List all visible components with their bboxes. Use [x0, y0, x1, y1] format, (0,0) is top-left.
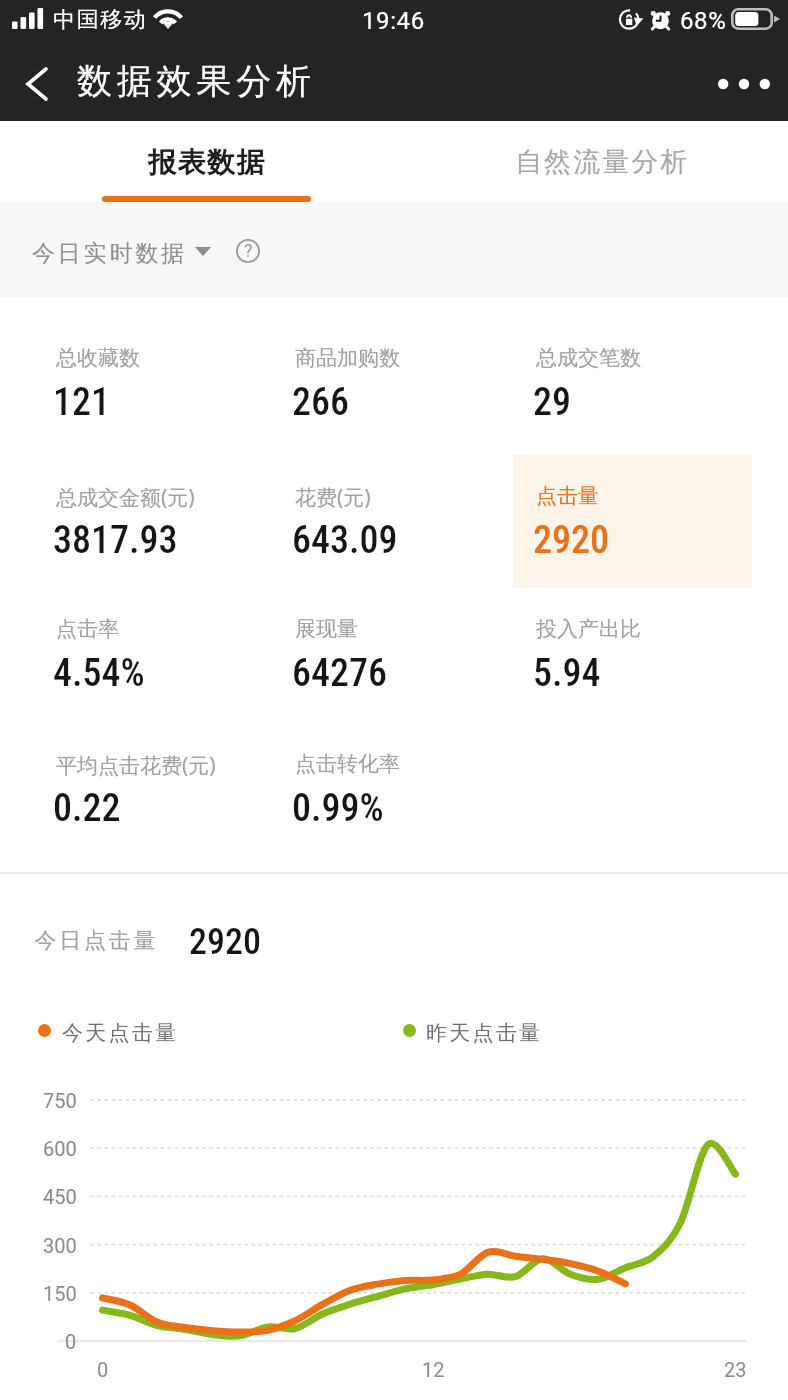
button[interactable]: 投入产出比: [513, 588, 752, 721]
staticText: 展现量: [295, 616, 358, 642]
button[interactable]: 报表数据: [0, 121, 414, 202]
staticText: 今日点击量: [33, 927, 157, 955]
staticText: 0.22: [53, 786, 121, 831]
staticText: 2920: [189, 921, 261, 963]
staticText: 总成交笔数: [536, 345, 641, 371]
staticText: 64276: [292, 651, 387, 696]
staticText: 0.99%: [292, 786, 384, 831]
staticText: 数据效果分析: [77, 59, 316, 103]
staticText: 自然流量分析: [515, 145, 690, 179]
staticText: 总成交金额(元): [56, 483, 195, 512]
staticText: 点击转化率: [295, 751, 400, 777]
button[interactable]: 总成交金额(元): [33, 455, 272, 588]
button[interactable]: 花费(元): [272, 455, 511, 588]
staticText: 点击量: [536, 483, 599, 509]
button[interactable]: 点击率: [33, 588, 272, 721]
staticText: 121: [53, 380, 110, 425]
button[interactable]: More options: [700, 48, 788, 120]
staticText: 23: [724, 1358, 747, 1381]
staticText: 266: [292, 380, 349, 425]
staticText: 0: [65, 1330, 77, 1353]
staticText: 68%: [680, 7, 727, 35]
button[interactable]: 总成交笔数: [513, 317, 752, 450]
button[interactable]: 点击转化率: [272, 723, 511, 856]
staticText: 2920: [533, 518, 609, 563]
staticText: 450: [43, 1185, 77, 1208]
button[interactable]: 展现量: [272, 588, 511, 721]
staticText: 商品加购数: [295, 345, 400, 371]
staticText: 19:46: [362, 7, 425, 35]
button[interactable]: Back: [0, 47, 74, 121]
staticText: 3817.93: [53, 518, 178, 563]
staticText: 中国移动: [53, 6, 148, 34]
button[interactable]: 平均点击花费(元): [33, 723, 272, 856]
staticText: 5.94: [533, 651, 601, 696]
staticText: 750: [43, 1089, 77, 1112]
staticText: 总收藏数: [56, 345, 140, 371]
staticText: 29: [533, 380, 571, 425]
staticText: 300: [43, 1234, 77, 1257]
button[interactable]: 点击量: [513, 455, 752, 588]
button[interactable]: 总收藏数: [33, 317, 272, 450]
staticText: 150: [43, 1282, 77, 1305]
staticText: 点击率: [56, 616, 119, 642]
staticText: 今天点击量: [62, 1020, 179, 1046]
staticText: 12: [422, 1358, 445, 1381]
staticText: ?: [244, 240, 253, 261]
button[interactable]: 商品加购数: [272, 317, 511, 450]
staticText: 4.54%: [53, 651, 145, 696]
button[interactable]: 今日实时数据: [22, 214, 224, 284]
staticText: 600: [43, 1137, 77, 1160]
staticText: 昨天点击量: [426, 1020, 543, 1046]
button[interactable]: 今日点击量: [0, 890, 788, 985]
button[interactable]: 自然流量分析: [414, 121, 788, 202]
staticText: 643.09: [292, 518, 398, 563]
staticText: 0: [97, 1358, 109, 1381]
staticText: 报表数据: [148, 145, 266, 180]
staticText: 平均点击花费(元): [56, 751, 216, 780]
staticText: 今日实时数据: [32, 239, 187, 268]
button[interactable]: Help: [226, 229, 270, 273]
staticText: 投入产出比: [536, 616, 641, 642]
staticText: 花费(元): [295, 483, 371, 512]
